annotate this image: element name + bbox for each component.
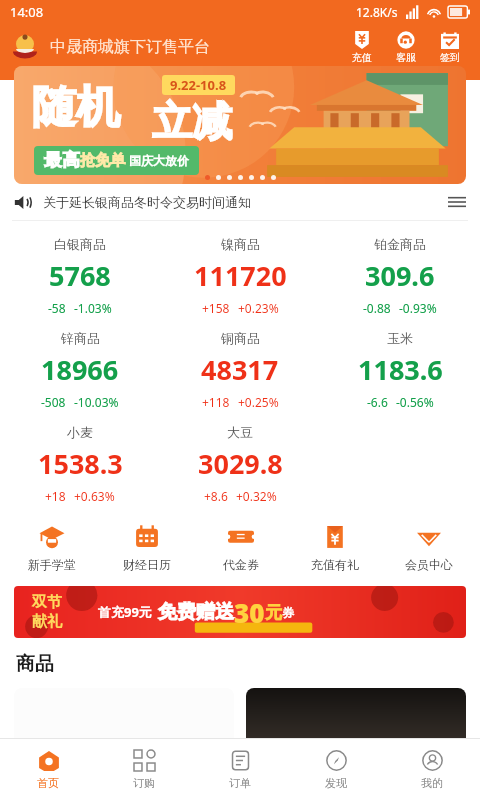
staticText: 5768	[49, 257, 111, 294]
staticText: 最高	[44, 149, 80, 172]
staticText: 309.6	[365, 257, 435, 294]
staticText: 中晟商城旗下订售平台	[50, 37, 210, 57]
staticText: -0.88	[363, 300, 391, 316]
button[interactable]: 新手学堂	[4, 517, 99, 578]
staticText: 3029.8	[198, 445, 283, 482]
staticText: 小麦	[67, 424, 93, 440]
staticText: +0.23%	[238, 300, 279, 316]
staticText: 代金券	[223, 557, 259, 572]
staticText: 锌商品	[61, 330, 100, 346]
button[interactable]: 我的	[384, 739, 480, 800]
button[interactable]: 签到	[428, 28, 472, 66]
staticText: -58	[48, 300, 66, 316]
button[interactable]: 小麦	[0, 417, 160, 511]
staticText: -6.6	[367, 394, 388, 410]
staticText: 财经日历	[123, 557, 171, 572]
staticText: 券	[282, 605, 294, 620]
staticText: +0.25%	[238, 394, 279, 410]
staticText: 48317	[201, 351, 279, 388]
button[interactable]	[246, 688, 466, 778]
staticText: 双节	[32, 593, 62, 612]
staticText: 国庆大放价	[129, 153, 189, 168]
button[interactable]: 铜商品	[160, 323, 320, 417]
staticText: 关于延长银商品冬时令交易时间通知	[43, 194, 251, 210]
staticText: 111720	[194, 257, 287, 294]
button[interactable]: 大豆	[160, 417, 320, 511]
staticText: 抢免单	[80, 151, 125, 170]
button[interactable]: 铂金商品	[320, 229, 480, 323]
staticText: 订单	[229, 776, 251, 790]
staticText: -10.03%	[74, 394, 119, 410]
button[interactable]: 9.22-10.8	[14, 66, 466, 184]
staticText: 9.22-10.8	[170, 76, 227, 94]
staticText: +0.63%	[74, 488, 115, 504]
staticText: -508	[41, 394, 66, 410]
staticText: 大豆	[227, 424, 253, 440]
button[interactable]: 发现	[288, 739, 384, 800]
staticText: 会员中心	[405, 557, 453, 572]
staticText: 首页	[37, 776, 59, 790]
staticText: 铜商品	[221, 330, 260, 346]
staticText: 18966	[41, 351, 119, 388]
button[interactable]: More	[448, 193, 466, 211]
staticText: 镍商品	[221, 236, 260, 252]
button[interactable]: 会员中心	[382, 517, 476, 578]
button[interactable]: 订单	[192, 739, 288, 800]
button[interactable]: 充值	[340, 28, 384, 66]
button[interactable]: 白银商品	[0, 229, 160, 323]
button[interactable]: 双节	[14, 586, 466, 638]
staticText: 白银商品	[54, 236, 106, 252]
staticText: 随机	[32, 80, 120, 135]
staticText: 免费赠送	[158, 600, 234, 624]
button[interactable]: 锌商品	[0, 323, 160, 417]
staticText: 我的	[421, 776, 443, 790]
staticText: -0.56%	[396, 394, 434, 410]
staticText: 首充99元	[98, 603, 152, 621]
button[interactable]: 镍商品	[160, 229, 320, 323]
button[interactable]	[14, 688, 234, 778]
staticText: +0.32%	[236, 488, 277, 504]
staticText: 新手学堂	[28, 557, 76, 572]
staticText: 元	[265, 602, 282, 623]
staticText: 订购	[133, 776, 155, 790]
staticText: 签到	[440, 51, 460, 64]
button[interactable]: 订购	[96, 739, 192, 800]
button[interactable]: Announcement	[0, 184, 480, 220]
button[interactable]: 充值有礼	[288, 517, 382, 578]
staticText: 立减	[152, 96, 232, 146]
staticText: 发现	[325, 776, 347, 790]
staticText: 玉米	[387, 330, 413, 346]
button[interactable]: 玉米	[320, 323, 480, 417]
staticText: -0.93%	[399, 300, 437, 316]
staticText: +8.6	[204, 488, 228, 504]
staticText: 铂金商品	[374, 236, 426, 252]
staticText: 充值	[352, 51, 372, 64]
staticText: 客服	[396, 51, 416, 64]
staticText: +158	[202, 300, 230, 316]
button[interactable]: 客服	[384, 28, 428, 66]
staticText: -1.03%	[74, 300, 112, 316]
staticText: 14:08	[10, 3, 44, 21]
staticText: +118	[202, 394, 230, 410]
staticText: 1183.6	[358, 351, 443, 388]
staticText: 30	[234, 595, 265, 630]
other: Announcement	[14, 194, 31, 211]
staticText: 献礼	[32, 612, 62, 631]
button[interactable]: 财经日历	[99, 517, 194, 578]
button[interactable]: 首页	[0, 739, 96, 800]
staticText: 12.8K/s	[356, 4, 398, 20]
staticText: 商品	[16, 652, 54, 676]
staticText: +18	[45, 488, 66, 504]
button[interactable]: 代金券	[194, 517, 288, 578]
staticText: 1538.3	[38, 445, 123, 482]
staticText: 充值有礼	[311, 557, 359, 572]
